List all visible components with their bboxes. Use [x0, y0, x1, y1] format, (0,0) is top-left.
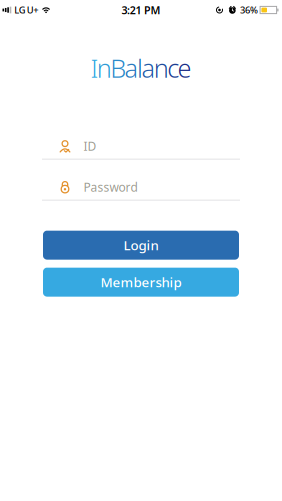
textField[interactable]: ID [83, 138, 240, 154]
staticText: B [110, 51, 126, 85]
staticText: n [97, 51, 112, 85]
button[interactable]: Membership [43, 268, 239, 297]
staticText: ID [83, 138, 96, 154]
button[interactable]: Login [43, 231, 239, 260]
staticText: Membership [100, 273, 181, 291]
secureTextField[interactable]: Password [83, 179, 240, 195]
staticText: e [178, 51, 192, 85]
staticText: Password [83, 179, 137, 195]
staticText: a [125, 51, 139, 85]
staticText: Login [123, 236, 158, 254]
staticText: a [141, 51, 155, 85]
staticText: LG U+ [14, 4, 38, 16]
staticText: I [90, 51, 98, 85]
staticText: c [167, 51, 179, 85]
staticText: 3:21 PM [121, 3, 161, 17]
staticText: n [154, 51, 169, 85]
staticText: 36% [240, 4, 258, 16]
staticText: l [137, 51, 143, 85]
